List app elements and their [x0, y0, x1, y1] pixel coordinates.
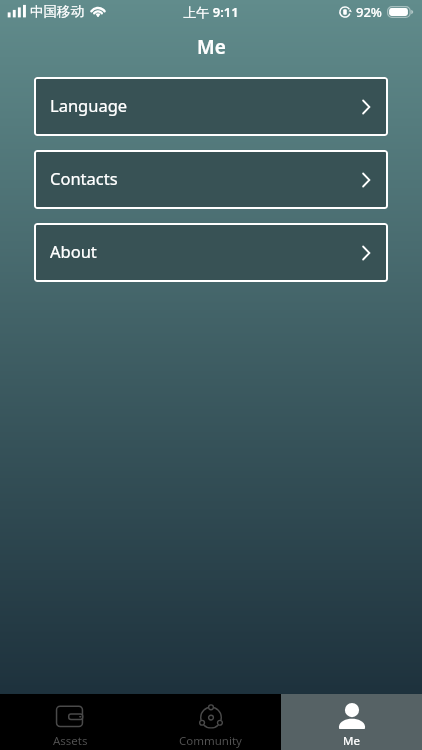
staticText: Contacts: [50, 167, 118, 189]
button[interactable]: About: [34, 223, 388, 282]
staticText: 中国移动: [30, 3, 84, 20]
staticText: Me: [343, 733, 360, 749]
staticText: Me: [197, 34, 226, 60]
other: Open Contacts: [360, 172, 370, 188]
staticText: About: [50, 240, 97, 262]
staticText: 上午 9:11: [0, 3, 422, 21]
other: Open About: [360, 245, 370, 261]
staticText: Language: [50, 94, 128, 116]
button[interactable]: Assets: [0, 694, 140, 750]
staticText: 92%: [356, 3, 382, 21]
other: Open Language: [360, 99, 370, 115]
button[interactable]: Contacts: [34, 150, 388, 209]
button[interactable]: Community: [140, 694, 281, 750]
staticText: Community: [179, 733, 242, 749]
staticText: Assets: [53, 733, 88, 749]
button[interactable]: Language: [34, 77, 388, 136]
button[interactable]: Me: [281, 694, 422, 750]
